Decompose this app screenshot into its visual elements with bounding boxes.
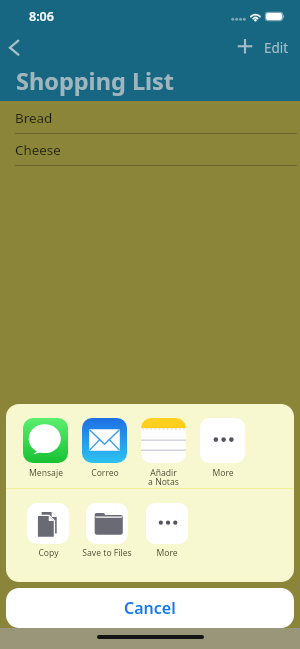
staticText: Añadir a Notas	[148, 467, 179, 488]
button[interactable]: Cheese	[0, 134, 300, 166]
button[interactable]: Add	[231, 34, 259, 66]
staticText: Edit	[264, 39, 289, 57]
staticText: Copy	[38, 547, 59, 559]
button[interactable]: Back	[0, 34, 30, 66]
button[interactable]: Save to Files	[76, 503, 138, 559]
button[interactable]: Correo	[73, 418, 136, 479]
button[interactable]: More	[136, 503, 198, 559]
staticText: Correo	[91, 467, 119, 479]
button[interactable]: Copy	[17, 503, 79, 559]
button[interactable]: More	[191, 418, 254, 479]
staticText: Cheese	[15, 141, 61, 159]
staticText: More	[156, 547, 178, 559]
staticText: Cancel	[124, 597, 176, 619]
button[interactable]: Añadir a Notas	[132, 418, 195, 488]
staticText: Shopping List	[16, 65, 175, 97]
staticText: More	[212, 467, 234, 479]
staticText: Bread	[15, 109, 53, 127]
button[interactable]: Bread	[0, 102, 300, 134]
staticText: 8:06	[29, 8, 54, 25]
staticText: Mensaje	[29, 467, 63, 479]
button[interactable]: Mensaje	[14, 418, 77, 479]
staticText: Save to Files	[82, 547, 132, 559]
button[interactable]: Cancel	[6, 588, 294, 628]
button[interactable]: Edit	[258, 34, 294, 66]
